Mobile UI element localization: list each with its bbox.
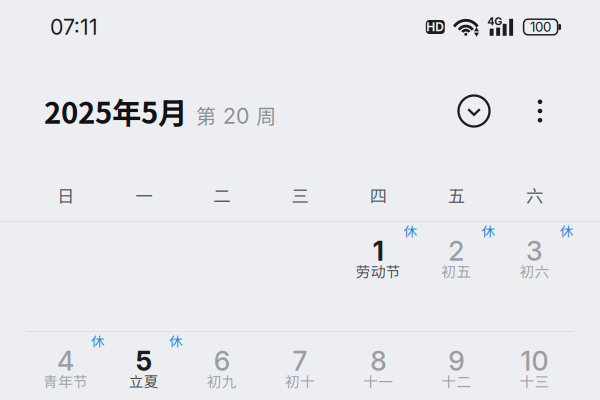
staticText: 10: [520, 345, 548, 377]
staticText: 休: [560, 221, 573, 240]
button[interactable]: 7: [261, 332, 339, 400]
staticText: 四: [370, 182, 387, 208]
staticText: 五: [448, 182, 465, 208]
staticText: 4: [57, 345, 74, 377]
staticText: 劳动节: [356, 260, 401, 281]
staticText: 立夏: [129, 370, 159, 391]
staticText: 3: [526, 235, 543, 267]
staticText: 2: [448, 235, 464, 267]
button[interactable]: 6: [183, 332, 261, 400]
button[interactable]: 3: [495, 222, 573, 332]
staticText: 1: [373, 235, 384, 267]
button[interactable]: 4: [26, 332, 105, 400]
staticText: 100: [530, 19, 551, 35]
staticText: 休: [169, 331, 182, 350]
staticText: 休: [91, 331, 104, 350]
staticText: 休: [482, 221, 495, 240]
staticText: 二: [213, 182, 230, 208]
staticText: 9: [448, 345, 464, 377]
staticText: 十三: [519, 370, 549, 391]
staticText: 六: [526, 182, 543, 208]
staticText: 日: [57, 182, 74, 208]
staticText: 初九: [207, 370, 237, 391]
staticText: 6: [214, 345, 230, 377]
staticText: 20: [223, 103, 249, 129]
button[interactable]: 9: [417, 332, 495, 400]
staticText: 2025年5月: [44, 90, 187, 132]
staticText: 十二: [441, 370, 471, 391]
button[interactable]: 5: [105, 332, 183, 400]
staticText: 休: [404, 221, 417, 240]
staticText: 初五: [441, 260, 471, 281]
button[interactable]: 2025年5月: [44, 90, 276, 132]
button[interactable]: Expand month view: [452, 89, 496, 133]
button[interactable]: 1: [339, 222, 417, 332]
staticText: HD: [426, 20, 444, 34]
staticText: 十一: [363, 370, 393, 391]
staticText: 8: [370, 345, 386, 377]
button[interactable]: 2: [417, 222, 495, 332]
staticText: 一: [135, 182, 152, 208]
staticText: 4G: [487, 15, 502, 28]
staticText: 初六: [519, 260, 549, 281]
staticText: 7: [292, 345, 307, 377]
button[interactable]: More options: [518, 89, 562, 133]
button[interactable]: 10: [495, 332, 573, 400]
staticText: 三: [291, 182, 308, 208]
staticText: 第: [196, 101, 216, 130]
staticText: 周: [256, 101, 276, 130]
staticText: 初十: [285, 370, 315, 391]
staticText: 5: [136, 345, 152, 377]
staticText: 07:11: [50, 14, 98, 40]
button[interactable]: 8: [339, 332, 417, 400]
staticText: 青年节: [43, 370, 88, 391]
